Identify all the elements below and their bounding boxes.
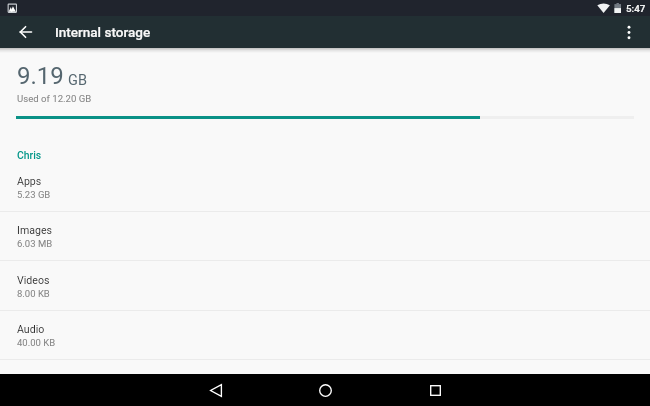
button[interactable]: Home bbox=[309, 374, 341, 406]
staticText: Chris bbox=[17, 149, 42, 161]
staticText: Audio bbox=[17, 323, 45, 335]
staticText: 5.23 GB bbox=[17, 189, 51, 200]
button[interactable]: Apps bbox=[0, 162, 650, 212]
staticText: 6.03 MB bbox=[17, 238, 53, 249]
staticText: Images bbox=[17, 224, 52, 236]
staticText: Videos bbox=[17, 274, 50, 286]
button[interactable]: Back bbox=[200, 374, 232, 406]
button[interactable]: Audio bbox=[0, 310, 650, 360]
button[interactable]: Videos bbox=[0, 261, 650, 311]
staticText: Apps bbox=[17, 175, 42, 187]
button[interactable]: Navigate up bbox=[13, 16, 38, 48]
staticText: 8.00 KB bbox=[17, 288, 50, 299]
staticText: 40.00 KB bbox=[17, 337, 56, 348]
staticText: GB bbox=[68, 72, 87, 89]
staticText: 5:47 bbox=[626, 3, 646, 14]
staticText: Used of 12.20 GB bbox=[17, 93, 92, 104]
staticText: 9.19 bbox=[17, 62, 64, 90]
button[interactable]: Images bbox=[0, 211, 650, 261]
button[interactable]: Recent apps bbox=[419, 374, 451, 406]
staticText: Internal storage bbox=[55, 24, 151, 40]
button[interactable]: More options bbox=[616, 16, 642, 48]
